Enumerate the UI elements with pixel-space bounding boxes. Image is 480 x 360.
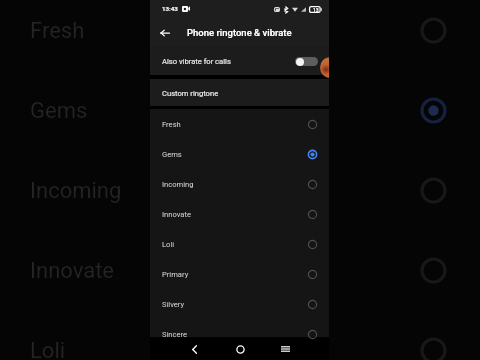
button[interactable]: Gems — [150, 139, 329, 169]
button[interactable]: Incoming — [150, 169, 329, 199]
button[interactable]: Also vibrate for calls — [150, 46, 329, 76]
button[interactable]: Navigate up — [155, 23, 174, 42]
staticText: Custom ringtone — [162, 89, 219, 98]
staticText: Incoming — [30, 178, 122, 204]
staticText: Innovate — [162, 210, 191, 219]
button[interactable]: Primary — [150, 259, 329, 289]
staticText: Also vibrate for calls — [162, 57, 231, 66]
button[interactable]: Custom ringtone — [150, 79, 329, 107]
staticText: Gems — [30, 98, 88, 124]
staticText: Fresh — [162, 120, 181, 129]
button[interactable]: Loli — [150, 229, 329, 259]
button[interactable]: Fresh — [150, 109, 329, 139]
button[interactable]: Toggle also vibrate for calls — [295, 57, 318, 66]
staticText: 13:43 — [162, 5, 178, 12]
button[interactable]: Sincere — [150, 319, 329, 349]
button[interactable]: Back — [185, 340, 203, 358]
staticText: Sincere — [162, 330, 188, 339]
staticText: 13 — [313, 7, 319, 13]
staticText: Phone ringtone & vibrate — [187, 27, 292, 38]
button[interactable]: Home — [231, 340, 249, 358]
staticText: Silvery — [162, 300, 185, 309]
staticText: Gems — [162, 150, 182, 159]
button[interactable]: Silvery — [150, 289, 329, 319]
staticText: Innovate — [30, 258, 114, 284]
staticText: Loli — [162, 240, 175, 249]
staticText: Incoming — [162, 180, 194, 189]
button[interactable]: Innovate — [150, 199, 329, 229]
staticText: Fresh — [30, 18, 85, 44]
button[interactable]: Recent apps — [276, 340, 294, 358]
staticText: Primary — [162, 270, 189, 279]
staticText: Loli — [30, 338, 66, 360]
